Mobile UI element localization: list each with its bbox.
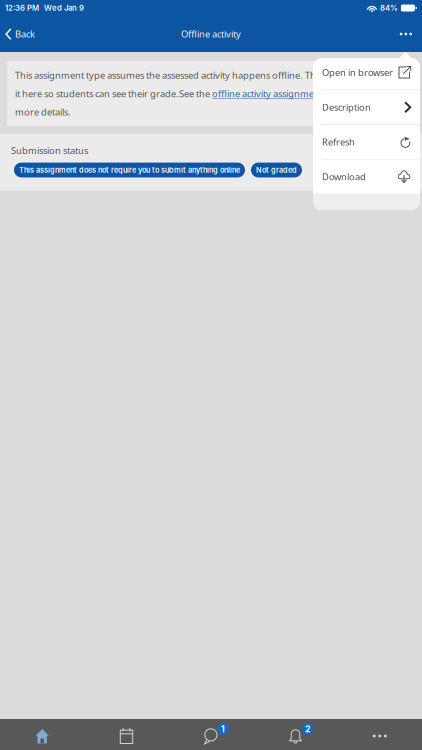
staticText: Offline activity	[181, 28, 241, 40]
staticText: Wed Jan 9	[44, 3, 84, 13]
staticText: Description	[322, 101, 371, 113]
staticText: it here so students can see their grade.…	[15, 87, 212, 100]
staticText: Download	[322, 170, 366, 183]
staticText: 2	[305, 724, 310, 734]
button[interactable]: Open in browser	[313, 55, 420, 89]
staticText: Not graded	[256, 166, 297, 174]
staticText: more details.	[15, 106, 71, 118]
staticText: 12:36 PM	[5, 3, 39, 13]
staticText: offline activity assignment	[212, 87, 323, 100]
button[interactable]: Download	[313, 160, 420, 194]
button[interactable]: Refresh	[313, 125, 420, 159]
staticText: Back	[15, 28, 35, 40]
button[interactable]: Back	[0, 16, 40, 52]
staticText: Refresh	[322, 136, 355, 148]
button[interactable]: Notifications	[253, 719, 338, 750]
button[interactable]: More options	[390, 16, 422, 52]
button[interactable]: Site home	[0, 719, 84, 750]
staticText: This assignment type assumes the assesse…	[15, 69, 322, 81]
staticText: Submission status	[11, 144, 88, 157]
staticText: This assignment does not require you to …	[19, 166, 240, 174]
button[interactable]: Calendar	[84, 719, 169, 750]
staticText: Open in browser	[322, 66, 393, 79]
button[interactable]: Messages	[169, 719, 253, 750]
staticText: 84%	[380, 3, 398, 13]
button[interactable]: More	[338, 719, 422, 750]
staticText: 1	[221, 724, 225, 734]
button[interactable]: Description	[313, 90, 420, 124]
